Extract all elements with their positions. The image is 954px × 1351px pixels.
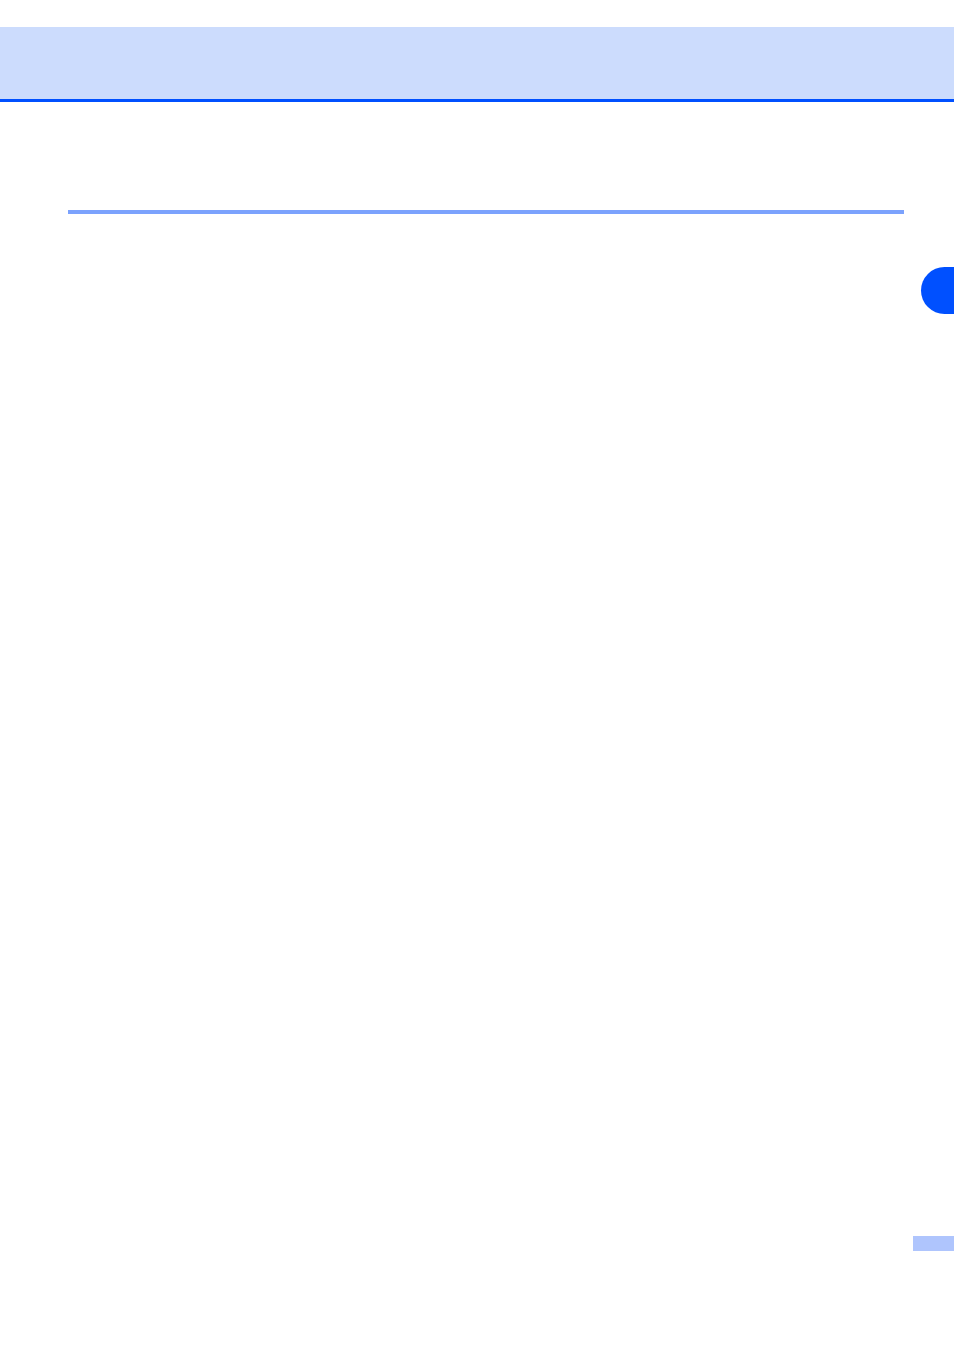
button[interactable]: Section index tab bbox=[921, 267, 954, 314]
